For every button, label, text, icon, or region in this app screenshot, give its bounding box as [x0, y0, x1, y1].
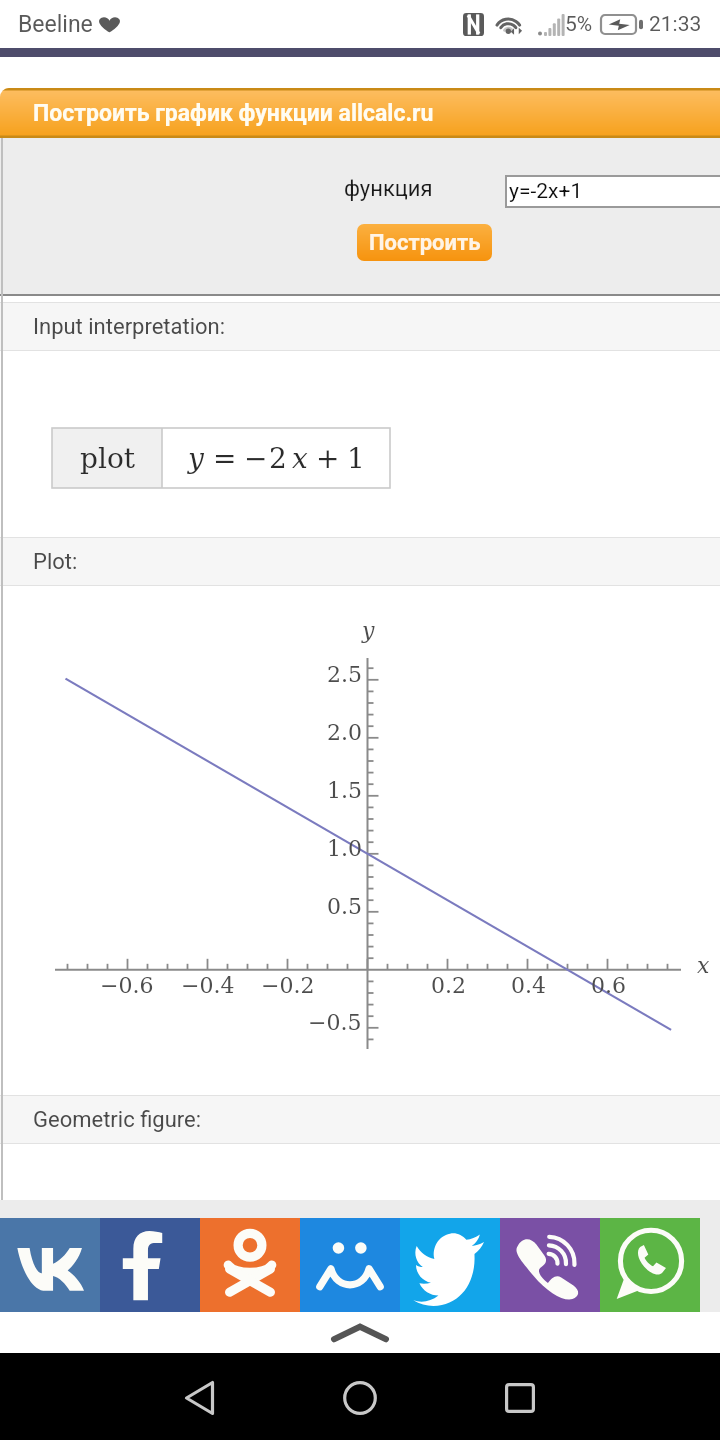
- staticText: −0.4: [181, 973, 235, 999]
- button[interactable]: Odnoklassniki: [200, 1218, 300, 1312]
- button[interactable]: Twitter: [400, 1218, 500, 1312]
- button[interactable]: Moi Mir: [300, 1218, 400, 1312]
- staticText: 1.0: [327, 836, 362, 862]
- staticText: 2.0: [327, 720, 362, 746]
- staticText: plot: [80, 442, 135, 475]
- staticText: 0.6: [591, 973, 626, 999]
- staticText: 21:33: [649, 12, 702, 37]
- staticText: +: [316, 442, 340, 475]
- button[interactable]: Back: [159, 1358, 239, 1438]
- button[interactable]: VK: [0, 1218, 100, 1312]
- staticText: Plot:: [33, 549, 78, 575]
- button[interactable]: Viber: [500, 1218, 600, 1312]
- staticText: Построить график функции allcalc.ru: [33, 100, 434, 127]
- staticText: 2: [269, 442, 287, 475]
- staticText: y: [362, 618, 375, 644]
- button[interactable]: Recents: [480, 1358, 560, 1438]
- staticText: 1.5: [327, 778, 362, 804]
- staticText: 1: [347, 442, 365, 475]
- staticText: y=-2x+1: [509, 179, 583, 204]
- staticText: −0.6: [100, 973, 154, 999]
- button[interactable]: Построить: [357, 224, 492, 261]
- staticText: функция: [344, 176, 433, 202]
- button[interactable]: Facebook: [100, 1218, 200, 1312]
- staticText: 5%: [565, 12, 593, 37]
- button[interactable]: Построить график функции allcalc.ru: [0, 88, 720, 138]
- staticText: x: [292, 442, 308, 475]
- staticText: 0.2: [431, 973, 466, 999]
- staticText: −: [244, 442, 268, 475]
- staticText: −0.5: [308, 1010, 362, 1036]
- staticText: =: [213, 442, 237, 475]
- staticText: Построить: [369, 230, 481, 256]
- staticText: y: [188, 442, 204, 475]
- staticText: 2.5: [327, 662, 362, 688]
- staticText: Geometric figure:: [33, 1107, 202, 1133]
- staticText: 0.5: [327, 894, 362, 920]
- staticText: Input interpretation:: [33, 314, 226, 340]
- staticText: Beeline: [18, 11, 93, 38]
- staticText: 0.4: [511, 973, 546, 999]
- staticText: −0.2: [261, 973, 315, 999]
- staticText: x: [697, 953, 710, 979]
- button[interactable]: Home: [320, 1358, 400, 1438]
- button[interactable]: WhatsApp: [600, 1218, 700, 1312]
